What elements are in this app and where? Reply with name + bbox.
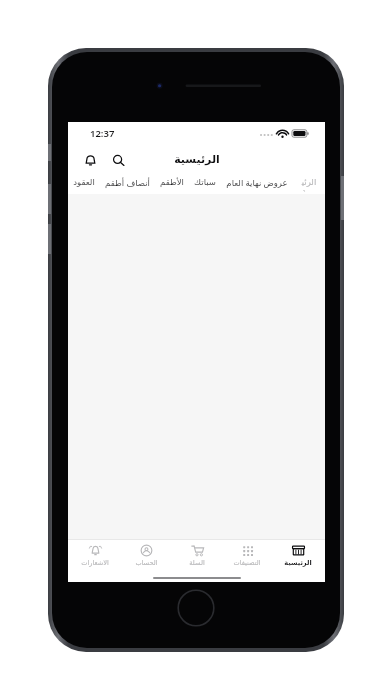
button[interactable]: العقود [68,175,100,194]
button[interactable]: التصنيفات [223,542,271,573]
staticText: الاشعارات [81,559,109,567]
staticText: السلة [189,559,205,567]
staticText: الرئيسية [284,559,312,567]
button[interactable]: سباتك [189,175,221,194]
button[interactable]: Search [106,148,130,172]
button[interactable]: عروض نهاية العام [221,175,293,194]
staticText: التصنيفات [233,559,261,567]
button[interactable]: Notifications [78,148,102,172]
staticText: سباتك [194,177,216,187]
staticText: أنصاف أطقم [105,177,150,189]
button[interactable]: السلة [173,542,221,573]
staticText: الرئيسية [298,177,320,192]
button[interactable]: الرئيسية [274,542,322,573]
button[interactable]: الرئيسية [293,175,325,194]
staticText: الحساب [135,559,158,567]
button[interactable]: الحساب [122,542,170,573]
staticText: 12:37 [90,127,115,140]
staticText: عروض نهاية العام [226,177,288,189]
staticText: العقود [73,177,95,187]
other: Home button [177,589,215,627]
staticText: الرئيسية [174,153,220,166]
button[interactable]: الاشعارات [71,542,119,573]
staticText: الأطقم [160,177,184,187]
button[interactable]: أنصاف أطقم [100,175,155,194]
button[interactable]: الأطقم [155,175,189,194]
